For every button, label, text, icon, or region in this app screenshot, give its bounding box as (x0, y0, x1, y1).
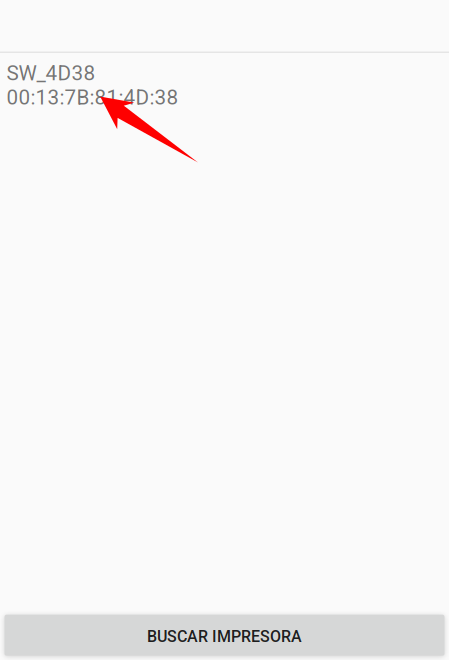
button[interactable]: SW_4D38 (0, 53, 449, 115)
staticText: BUSCAR IMPRESORA (147, 627, 302, 646)
button[interactable]: BUSCAR IMPRESORA (4, 615, 444, 656)
staticText: 00:13:7B:81:4D:38 (6, 85, 178, 109)
staticText: SW_4D38 (6, 61, 95, 85)
